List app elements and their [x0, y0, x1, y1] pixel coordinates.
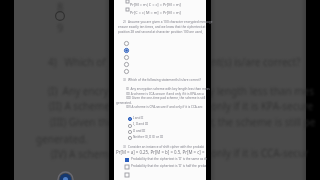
button[interactable]: Option [128, 130, 132, 134]
button[interactable]: Option [124, 62, 129, 67]
staticText: generated. [36, 132, 88, 146]
staticText: Neither (I), II (I) or III [133, 135, 163, 139]
button[interactable]: Unchecked [126, 8, 129, 11]
staticText: only if it is CCA-secur [211, 146, 309, 160]
button[interactable]: Option [124, 69, 129, 74]
button[interactable]: Unchecked [125, 173, 129, 177]
button[interactable]: Unchecked [125, 165, 129, 169]
staticText: Pr[M = m|C = c] = Pr[M = m] [130, 2, 181, 7]
staticText: 3) Which of the following statement(s) i… [123, 78, 201, 82]
button[interactable]: Selected option [124, 48, 129, 53]
staticText: ensure exactly ten times, and we know th… [118, 25, 206, 29]
staticText: Pr[C = c|M = m] = Pr[M = m] [130, 10, 181, 15]
staticText: I and II [133, 116, 144, 120]
staticText: (II) A scheme [49, 99, 110, 113]
button[interactable]: Option [128, 136, 132, 140]
staticText: 2) Assume you are given a 100 character … [123, 20, 213, 24]
staticText: generated. [116, 101, 132, 105]
staticText: Pr[M = a] = 0.25, Pr[M = b] = 0.5, Pr[M … [116, 149, 206, 155]
staticText: 8 [57, 0, 64, 14]
staticText: only if it is KPA-secure [211, 99, 314, 113]
staticText: (IV) A scheme is CPA-secure if and only … [126, 105, 203, 109]
staticText: (III) Given the one-time pad scheme, the… [126, 96, 206, 100]
staticText: 4) Which of [48, 55, 106, 69]
staticText: (II) A scheme is CCA-secure if and only … [126, 92, 204, 96]
staticText: Probability that the ciphertext is 'D' i… [131, 164, 207, 168]
staticText: nt(s) is/are correct? [211, 55, 301, 69]
button[interactable]: Unchecked [126, 0, 129, 3]
staticText: y length less than mes [209, 84, 314, 98]
button[interactable]: Option [124, 41, 129, 46]
button[interactable]: Option [128, 124, 132, 128]
staticText: position 28 and second at character posi… [118, 30, 203, 34]
staticText: r, the scheme is still pe [210, 115, 316, 129]
staticText: I, II and III [133, 122, 149, 126]
staticText: II and III [133, 129, 146, 133]
staticText: Probability that the ciphertext is 'D' i… [131, 157, 208, 161]
button[interactable]: Selected option [128, 117, 132, 121]
staticText: (I) Any encry [48, 84, 109, 98]
button[interactable]: Option [124, 55, 129, 60]
staticText: (IV) A schem [51, 147, 109, 161]
staticText: (III) Given the [50, 115, 114, 129]
staticText: 9 [57, 20, 64, 35]
staticText: 3) Consider an instance of shift cipher … [123, 145, 205, 149]
staticText: (I) Any encryption scheme with key lengt… [126, 87, 210, 91]
